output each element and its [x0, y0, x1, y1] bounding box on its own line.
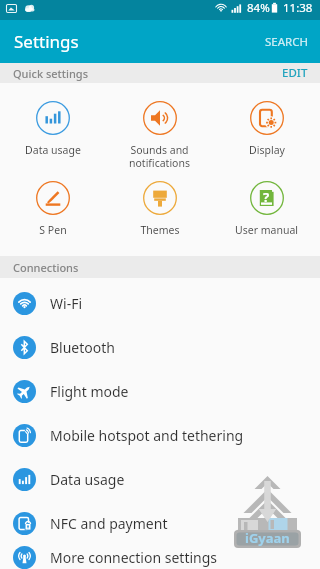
button[interactable]: Mobile hotspot and tethering — [0, 413, 320, 457]
button[interactable]: SEARCH — [251, 20, 320, 63]
staticText: Sounds and notifications — [129, 143, 190, 170]
button[interactable]: Sounds and notifications — [106, 101, 213, 170]
button[interactable]: Bluetooth — [0, 325, 320, 369]
staticText: 84% — [247, 0, 270, 16]
staticText: Settings — [14, 30, 79, 53]
button[interactable]: More connection settings — [0, 545, 320, 569]
staticText: EDIT — [282, 65, 308, 81]
staticText: Wi-Fi — [50, 294, 83, 313]
button[interactable]: Data usage — [0, 101, 106, 157]
staticText: More connection settings — [50, 548, 218, 567]
staticText: Mobile hotspot and tethering — [50, 426, 244, 445]
staticText: Quick settings — [13, 66, 89, 81]
staticText: NFC and payment — [50, 514, 168, 533]
staticText: ? — [263, 188, 270, 206]
button[interactable]: ? — [213, 181, 320, 237]
button[interactable]: Wi-Fi — [0, 281, 320, 325]
button[interactable]: S Pen — [0, 181, 106, 237]
staticText: Display — [249, 143, 285, 157]
staticText: Flight mode — [50, 382, 129, 401]
staticText: 11:38 — [283, 0, 313, 16]
staticText: iGyaan — [245, 529, 290, 547]
staticText: S Pen — [39, 223, 67, 237]
button[interactable]: NFC and payment — [0, 501, 320, 545]
staticText: User manual — [235, 223, 298, 237]
button[interactable]: Data usage — [0, 457, 320, 501]
button[interactable]: Flight mode — [0, 369, 320, 413]
staticText: Data usage — [50, 470, 125, 489]
staticText: Bluetooth — [50, 338, 115, 357]
staticText: Themes — [140, 223, 180, 237]
button[interactable]: Display — [213, 101, 320, 157]
staticText: Data usage — [25, 143, 81, 157]
staticText: Connections — [13, 260, 79, 275]
button[interactable]: EDIT — [268, 63, 320, 83]
button[interactable]: Themes — [106, 181, 213, 237]
staticText: SEARCH — [265, 34, 308, 50]
